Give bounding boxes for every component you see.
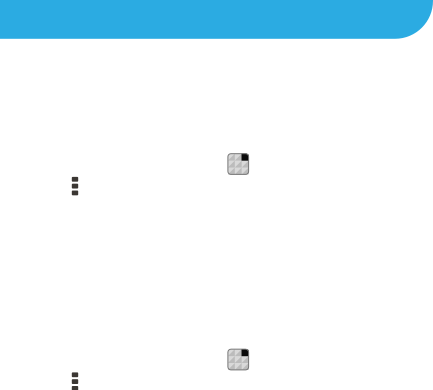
button[interactable]: Photo [228,154,249,174]
button[interactable]: Photo [228,349,249,370]
button[interactable]: More options [72,177,78,195]
button[interactable]: More options [72,373,78,390]
